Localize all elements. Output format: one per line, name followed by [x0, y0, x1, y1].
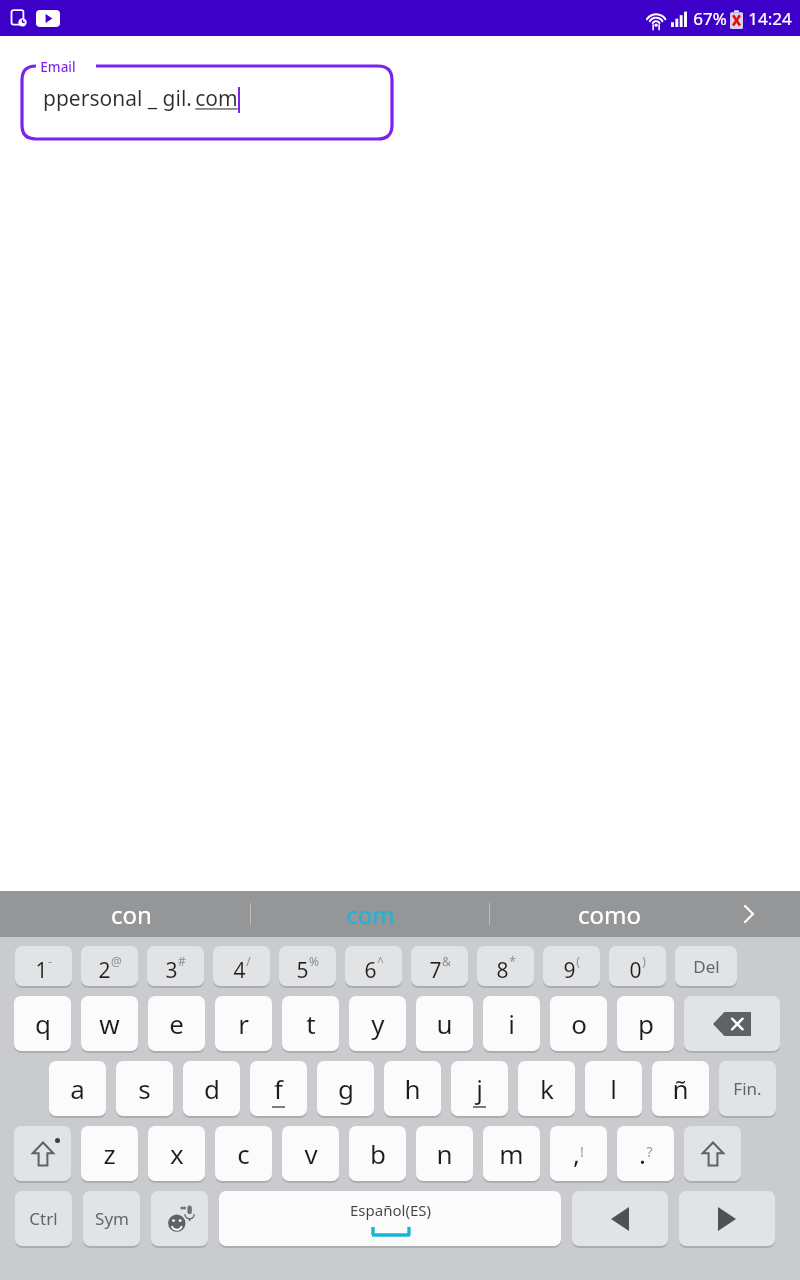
staticText: Email — [40, 58, 76, 76]
button[interactable]: t — [282, 996, 339, 1051]
staticText: 3 — [165, 956, 178, 985]
staticText: v — [304, 1136, 318, 1171]
button[interactable]: 5 — [279, 946, 336, 986]
button[interactable]: More suggestions — [728, 891, 770, 937]
button[interactable]: s — [116, 1061, 173, 1116]
staticText: con — [111, 898, 152, 931]
button[interactable]: f — [250, 1061, 307, 1116]
button[interactable]: com — [251, 891, 489, 937]
staticText: . — [639, 1136, 646, 1171]
staticText: i — [508, 1006, 515, 1041]
button[interactable]: 6 — [345, 946, 402, 986]
button[interactable]: m — [483, 1126, 540, 1181]
button[interactable]: r — [215, 996, 272, 1051]
button[interactable]: l — [585, 1061, 642, 1116]
staticText: 67% — [693, 7, 727, 30]
button[interactable]: ñ — [652, 1061, 709, 1116]
button[interactable]: i — [483, 996, 540, 1051]
staticText: Ctrl — [29, 1207, 58, 1230]
staticText: ! — [580, 1142, 584, 1161]
staticText: com — [346, 898, 395, 931]
staticText: s — [138, 1071, 151, 1106]
button[interactable]: 1 — [15, 946, 72, 986]
button[interactable]: period — [617, 1126, 674, 1181]
staticText: h — [404, 1071, 421, 1106]
button[interactable]: u — [416, 996, 473, 1051]
staticText: k — [540, 1071, 554, 1106]
button[interactable]: 3 — [147, 946, 204, 986]
button[interactable]: a — [49, 1061, 106, 1116]
button[interactable]: e — [148, 996, 205, 1051]
button[interactable]: 2 — [81, 946, 138, 986]
button[interactable]: x — [148, 1126, 205, 1181]
button[interactable]: 9 — [543, 946, 600, 986]
staticText: y — [371, 1006, 385, 1041]
button[interactable]: 7 — [411, 946, 468, 986]
staticText: c — [237, 1136, 250, 1171]
staticText: z — [103, 1136, 116, 1171]
staticText: ? — [646, 1142, 653, 1161]
staticText: como — [578, 898, 641, 931]
button[interactable]: z — [81, 1126, 138, 1181]
staticText: p — [638, 1006, 654, 1041]
staticText: , — [573, 1136, 580, 1171]
staticText: u — [436, 1006, 453, 1041]
button[interactable]: Caps lock — [14, 1126, 71, 1181]
button[interactable]: Space — [219, 1191, 561, 1246]
button[interactable]: comma — [550, 1126, 607, 1181]
button[interactable]: 8 — [477, 946, 534, 986]
staticText: r — [238, 1006, 249, 1041]
button[interactable]: Done — [719, 1061, 776, 1116]
button[interactable]: Move cursor right — [679, 1191, 775, 1246]
button[interactable]: w — [81, 996, 138, 1051]
staticText: com — [195, 84, 238, 113]
button[interactable]: d — [183, 1061, 240, 1116]
staticText: * — [509, 953, 516, 969]
button[interactable]: 4 — [213, 946, 270, 986]
button[interactable]: Backspace — [684, 996, 780, 1051]
staticText: Sym — [95, 1207, 129, 1230]
button[interactable]: Delete — [675, 946, 737, 986]
button[interactable]: Move cursor left — [572, 1191, 668, 1246]
button[interactable]: Email — [0, 50, 800, 145]
button[interactable]: q — [14, 996, 71, 1051]
staticText: 6 — [364, 956, 377, 985]
staticText: l — [610, 1071, 617, 1106]
staticText: f — [274, 1071, 283, 1106]
button[interactable]: o — [550, 996, 607, 1051]
button[interactable]: Symbols — [83, 1191, 140, 1246]
staticText: ) — [642, 953, 646, 969]
staticText: ppersonal _ gil. — [40, 84, 195, 113]
button[interactable]: con — [12, 891, 250, 937]
staticText: 5 — [296, 956, 309, 985]
button[interactable]: Control — [15, 1191, 72, 1246]
staticText: Fin. — [733, 1077, 762, 1100]
staticText: d — [204, 1071, 220, 1106]
button[interactable]: 0 — [609, 946, 666, 986]
staticText: 9 — [563, 956, 576, 985]
button[interactable]: v — [282, 1126, 339, 1181]
staticText: 2 — [98, 956, 111, 985]
button[interactable]: b — [349, 1126, 406, 1181]
button[interactable]: p — [617, 996, 674, 1051]
button[interactable]: n — [416, 1126, 473, 1181]
staticText: o — [571, 1006, 587, 1041]
staticText: n — [436, 1136, 453, 1171]
button[interactable]: como — [490, 891, 728, 937]
button[interactable]: c — [215, 1126, 272, 1181]
button[interactable]: j — [451, 1061, 508, 1116]
button[interactable]: Shift — [684, 1126, 741, 1181]
button[interactable]: y — [349, 996, 406, 1051]
staticText: ( — [576, 953, 580, 969]
button[interactable]: Emoji and voice input — [151, 1191, 208, 1246]
staticText: 8 — [496, 956, 509, 985]
staticText: 4 — [233, 956, 246, 985]
staticText: x — [170, 1136, 184, 1171]
staticText: e — [169, 1006, 184, 1041]
staticText: q — [35, 1006, 51, 1041]
button[interactable]: k — [518, 1061, 575, 1116]
button[interactable]: h — [384, 1061, 441, 1116]
staticText: b — [370, 1136, 386, 1171]
staticText: @ — [111, 953, 122, 969]
button[interactable]: g — [317, 1061, 374, 1116]
